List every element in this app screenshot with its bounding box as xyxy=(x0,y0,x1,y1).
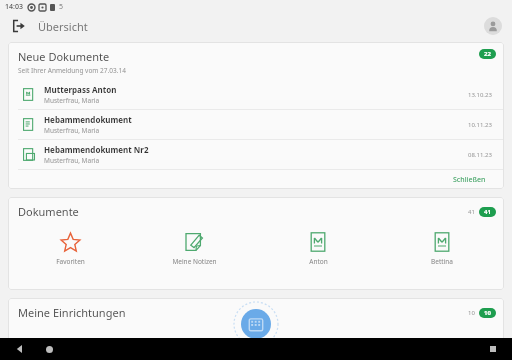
button[interactable]: Hebammendokument xyxy=(8,110,504,139)
staticText: 14:03 xyxy=(5,2,23,12)
button[interactable]: Favoriten xyxy=(8,229,132,268)
staticText: Schließen xyxy=(453,175,486,185)
staticText: 41 xyxy=(484,208,491,216)
button[interactable]: Bettina xyxy=(380,229,504,268)
button[interactable]: Mutterpass Anton xyxy=(8,80,504,109)
staticText: 08.11.23 xyxy=(468,151,492,159)
button[interactable]: Profil xyxy=(484,17,502,35)
button[interactable]: Anton xyxy=(256,229,380,268)
staticText: 41 xyxy=(468,208,475,216)
staticText: Übersicht xyxy=(38,19,88,34)
staticText: Anton xyxy=(309,257,328,266)
staticText: 10 xyxy=(484,309,491,317)
staticText: Favoriten xyxy=(56,257,85,266)
button[interactable]: Zurück xyxy=(16,345,24,353)
staticText: Hebammendokument Nr2 xyxy=(44,144,149,155)
staticText: 10.11.23 xyxy=(468,121,492,129)
staticText: 13.10.23 xyxy=(468,91,492,99)
button[interactable]: Einrichtung xyxy=(241,309,271,339)
button[interactable]: Abmelden xyxy=(10,17,28,35)
staticText: Meine Notizen xyxy=(172,257,217,266)
staticText: 10 xyxy=(468,309,475,317)
button[interactable]: Meine Notizen xyxy=(132,229,256,268)
staticText: Musterfrau, Maria xyxy=(44,96,100,105)
staticText: Neue Dokumente xyxy=(18,49,110,64)
staticText: 22 xyxy=(484,50,491,58)
staticText: Musterfrau, Maria xyxy=(44,126,100,135)
button[interactable]: Schließen xyxy=(449,172,490,188)
button[interactable]: Startseite xyxy=(46,346,53,353)
staticText: Meine Einrichtungen xyxy=(18,305,126,320)
staticText: Mutterpass Anton xyxy=(44,84,117,95)
staticText: Bettina xyxy=(431,257,453,266)
button[interactable]: Hebammendokument Nr2 xyxy=(8,140,504,169)
staticText: 5 xyxy=(59,2,64,12)
staticText: Dokumente xyxy=(18,204,79,219)
staticText: Seit Ihrer Anmeldung vom 27.03.14 xyxy=(18,66,126,75)
staticText: Hebammendokument xyxy=(44,114,132,125)
staticText: Musterfrau, Maria xyxy=(44,156,100,165)
